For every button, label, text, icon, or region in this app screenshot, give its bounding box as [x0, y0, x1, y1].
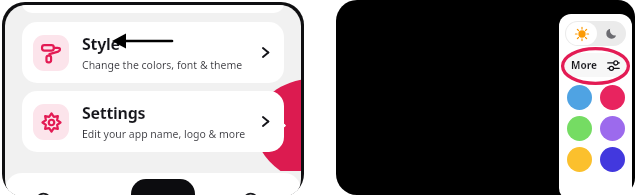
staticText: Change the colors, font & theme — [82, 58, 243, 72]
staticText: Edit your app name, logo & more — [82, 127, 246, 141]
button[interactable]: Colour option — [567, 116, 592, 141]
button[interactable]: Settings — [22, 91, 284, 152]
staticText: Style — [82, 33, 120, 55]
button[interactable]: Colour option — [567, 147, 592, 172]
button[interactable]: Style — [22, 22, 284, 83]
button[interactable]: Colour option — [600, 147, 625, 172]
staticText: Settings — [82, 102, 146, 124]
button[interactable]: Publish app — [203, 81, 301, 169]
staticText: More — [571, 58, 597, 72]
button[interactable]: More — [565, 53, 626, 77]
button[interactable]: Colour option — [600, 85, 625, 110]
button[interactable]: Colour option — [567, 85, 592, 110]
button[interactable]: Light theme — [566, 22, 597, 45]
button[interactable] — [131, 179, 195, 195]
button[interactable]: Dark theme — [597, 22, 625, 45]
button[interactable]: Colour option — [600, 116, 625, 141]
